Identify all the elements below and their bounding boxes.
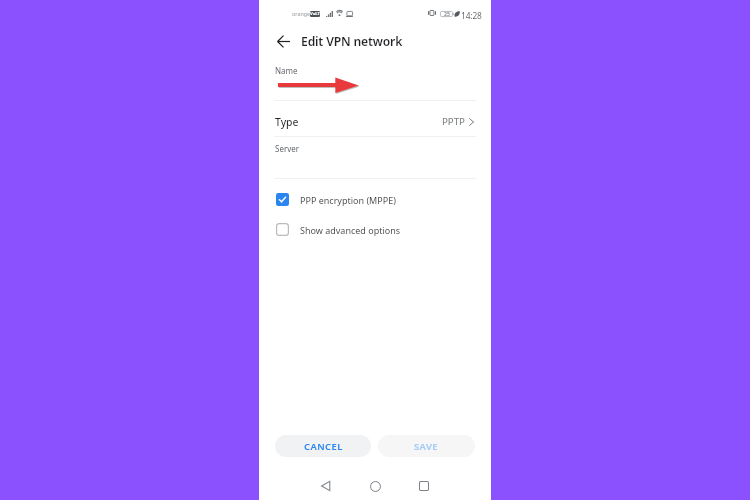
button[interactable]: SAVE [378,435,475,457]
staticText: VoLTE [310,11,320,17]
staticText: Name [275,65,298,76]
staticText: Edit VPN network [301,33,403,50]
staticText: PPP encryption (MPPE) [300,194,396,206]
staticText: 14:28 [461,10,482,21]
staticText: Type [275,115,299,129]
button[interactable]: CANCEL [275,435,371,457]
staticText: SAVE [414,440,439,453]
button[interactable]: Recents [414,476,434,496]
staticText: CANCEL [304,440,343,453]
button[interactable]: Home [365,476,385,496]
button[interactable]: PPP encryption (MPPE) [274,188,476,211]
staticText: PPTP [442,115,465,128]
button[interactable]: Show advanced options [274,218,476,241]
staticText: Server [275,143,300,154]
button[interactable]: Type [275,105,476,138]
staticText: Show advanced options [300,224,401,236]
staticText: orange [292,10,311,17]
staticText: 25 [444,10,450,17]
button[interactable]: Back [271,29,295,53]
button[interactable]: Back [316,476,336,496]
